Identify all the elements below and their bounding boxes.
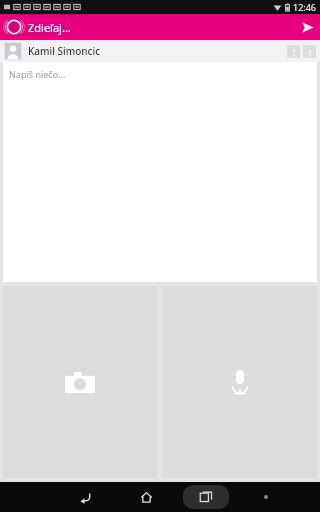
button[interactable]: Napíš niečo... — [3, 62, 317, 282]
staticText: Kamil Simoncic — [28, 44, 287, 58]
staticText: t — [308, 46, 312, 58]
staticText: 12:46 — [293, 1, 317, 13]
button[interactable]: Twitter — [303, 45, 316, 58]
button[interactable]: Home — [116, 482, 176, 512]
staticText: Zdieľaj... — [28, 20, 71, 35]
button[interactable]: Send — [294, 14, 320, 40]
button[interactable]: Menu — [236, 482, 296, 512]
button[interactable]: Recent apps — [176, 482, 236, 512]
button[interactable]: Facebook — [287, 45, 300, 58]
button[interactable]: Zdieľaj... — [4, 17, 71, 37]
button[interactable]: Take photo — [3, 286, 157, 478]
button[interactable]: Back — [55, 482, 116, 512]
staticText: f — [292, 46, 296, 58]
staticText: Napíš niečo... — [9, 68, 66, 80]
